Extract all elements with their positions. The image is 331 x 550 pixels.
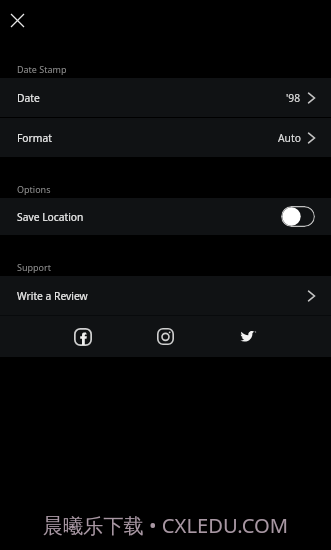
staticText: Date <box>17 91 40 105</box>
staticText: Save Location <box>17 210 84 224</box>
staticText: Write a Review <box>17 289 88 303</box>
button[interactable]: Save Location <box>0 198 331 235</box>
button[interactable]: Instagram <box>124 316 207 357</box>
button[interactable]: Date <box>0 78 331 117</box>
staticText: Format <box>17 131 52 145</box>
staticText: '98 <box>286 91 301 105</box>
button[interactable]: Twitter <box>207 316 290 357</box>
staticText: Options <box>17 183 51 195</box>
button[interactable]: Write a Review <box>0 276 331 315</box>
staticText: Date Stamp <box>17 63 67 75</box>
button[interactable]: Close <box>6 9 29 32</box>
staticText: Support <box>17 261 51 273</box>
button[interactable]: Facebook <box>41 316 124 357</box>
staticText: 晨曦乐下载 • CXLEDU.COM <box>0 511 331 539</box>
button[interactable]: Save Location toggle <box>281 206 315 227</box>
staticText: Auto <box>278 131 301 145</box>
button[interactable]: Format <box>0 118 331 157</box>
